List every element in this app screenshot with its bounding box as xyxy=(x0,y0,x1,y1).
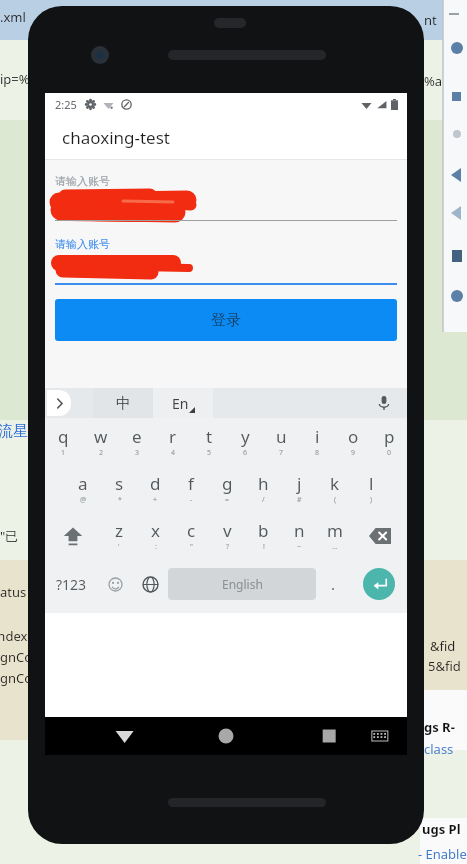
staticText: s xyxy=(115,472,124,495)
staticText: v xyxy=(223,519,232,542)
staticText: p xyxy=(384,425,395,448)
staticText: x xyxy=(151,519,160,542)
button[interactable]: t xyxy=(191,418,227,465)
staticText: 中 xyxy=(116,394,131,413)
button[interactable]: 请输入账号 xyxy=(55,237,397,285)
staticText: i xyxy=(315,425,320,448)
staticText: r xyxy=(169,425,177,448)
staticText: gs R- xyxy=(424,718,455,736)
staticText: - Enable 'A xyxy=(418,845,467,863)
staticText: . xyxy=(331,574,336,594)
button[interactable]: o xyxy=(335,418,371,465)
staticText: e xyxy=(132,425,142,448)
button[interactable]: d xyxy=(137,465,173,512)
staticText: 1 xyxy=(55,260,64,280)
staticText: 5&fid xyxy=(428,657,461,675)
button[interactable]: x xyxy=(137,512,173,559)
staticText: 6 xyxy=(243,448,248,458)
button[interactable]: 中 xyxy=(93,388,153,418)
button[interactable]: Shift xyxy=(45,512,100,559)
staticText: 9 xyxy=(351,448,356,458)
staticText: # xyxy=(297,495,302,505)
button[interactable]: y xyxy=(227,418,263,465)
button[interactable]: 登录 xyxy=(55,299,397,341)
staticText: z xyxy=(115,519,123,542)
staticText: m xyxy=(327,519,343,542)
staticText: ?123 xyxy=(56,575,87,594)
staticText: u xyxy=(276,425,287,448)
staticText: h xyxy=(258,472,269,495)
button[interactable]: i xyxy=(299,418,335,465)
button[interactable]: k xyxy=(317,465,353,512)
button[interactable]: r xyxy=(155,418,191,465)
button[interactable]: q xyxy=(45,418,82,465)
staticText: class xyxy=(424,740,454,758)
button[interactable]: . xyxy=(316,559,351,609)
button[interactable]: s xyxy=(101,465,137,512)
staticText: : xyxy=(155,542,157,552)
staticText: index xyxy=(0,627,28,645)
button[interactable]: c xyxy=(173,512,209,559)
staticText: j xyxy=(297,472,302,495)
staticText: / xyxy=(262,495,265,505)
staticText: 流星社区 xyxy=(0,422,58,441)
button[interactable]: b xyxy=(245,512,281,559)
button[interactable]: Voice input xyxy=(373,392,395,414)
staticText: t xyxy=(206,425,213,448)
button[interactable]: Expand toolbar xyxy=(47,390,71,416)
staticText: l xyxy=(369,472,374,495)
staticText: 5 xyxy=(207,448,212,458)
staticText: 2 xyxy=(99,448,104,458)
button[interactable]: u xyxy=(263,418,299,465)
button[interactable]: j xyxy=(281,465,317,512)
staticText: ~ xyxy=(297,542,302,552)
staticText: g xyxy=(222,472,233,495)
staticText: q xyxy=(58,425,69,448)
staticText: nt xyxy=(424,11,437,29)
button[interactable]: m xyxy=(317,512,353,559)
staticText: c xyxy=(187,519,196,542)
button[interactable]: English xyxy=(168,568,316,600)
button[interactable]: Backspace xyxy=(353,512,407,559)
staticText: 0 xyxy=(387,448,392,458)
button[interactable]: Enter xyxy=(351,559,407,609)
staticText: - xyxy=(190,495,193,505)
staticText: * xyxy=(118,495,122,505)
button[interactable]: 请输入账号 xyxy=(55,174,397,221)
button[interactable]: Emoji xyxy=(98,559,133,609)
staticText: ' xyxy=(118,542,120,552)
button[interactable]: Change keyboard language xyxy=(133,559,168,609)
staticText: f xyxy=(188,472,194,495)
button[interactable]: a xyxy=(64,465,101,512)
button[interactable]: f xyxy=(173,465,209,512)
button[interactable]: En xyxy=(153,388,213,418)
staticText: ugs Pl xyxy=(422,820,461,838)
button[interactable]: p xyxy=(371,418,407,465)
staticText: .xml xyxy=(0,8,26,26)
staticText: 1 xyxy=(61,448,66,458)
button[interactable]: z xyxy=(100,512,137,559)
staticText: k xyxy=(330,472,340,495)
staticText: b xyxy=(258,519,269,542)
button[interactable]: h xyxy=(245,465,281,512)
staticText: %a xyxy=(424,72,443,90)
button[interactable]: l xyxy=(353,465,389,512)
staticText: 8 xyxy=(315,448,320,458)
button[interactable]: w xyxy=(82,418,119,465)
staticText: 2:25 xyxy=(55,97,77,112)
staticText: = xyxy=(225,495,230,505)
staticText: @ xyxy=(80,495,87,505)
button[interactable]: g xyxy=(209,465,245,512)
button[interactable]: n xyxy=(281,512,317,559)
staticText: y xyxy=(241,425,250,448)
staticText: En xyxy=(172,394,189,413)
button[interactable]: v xyxy=(209,512,245,559)
staticText: English xyxy=(222,576,263,592)
staticText: n xyxy=(294,519,305,542)
staticText: w xyxy=(94,425,108,448)
staticText: ) xyxy=(370,495,373,505)
button[interactable]: e xyxy=(119,418,155,465)
staticText: &fid xyxy=(430,637,456,655)
button[interactable]: ?123 xyxy=(45,559,98,609)
